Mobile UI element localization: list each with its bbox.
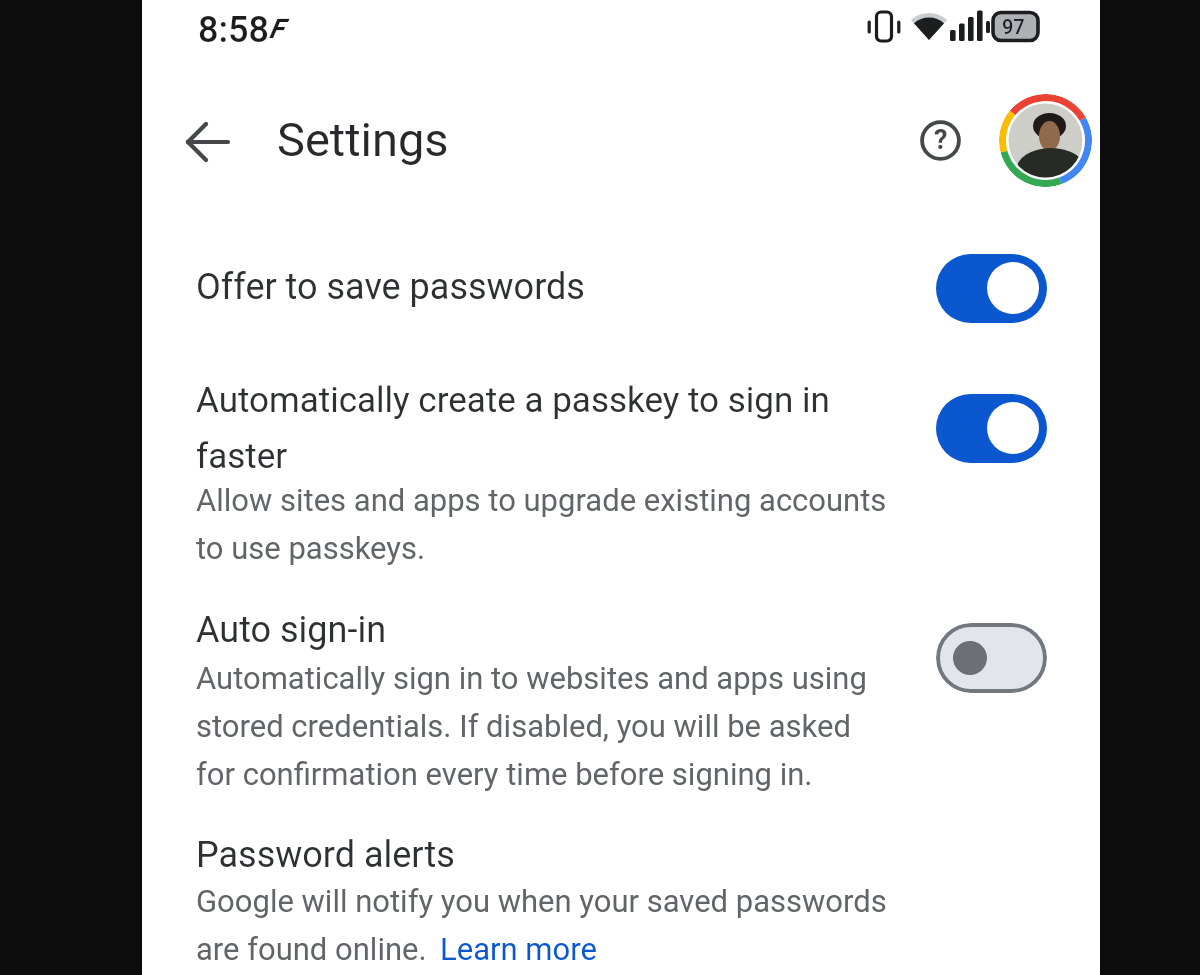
staticText: 97 — [1002, 15, 1025, 38]
staticText: Allow sites and apps to upgrade existing… — [196, 482, 887, 567]
staticText: ? — [934, 124, 948, 156]
button[interactable] — [936, 394, 1047, 463]
staticText: Auto sign-in — [196, 609, 387, 651]
staticText: Settings — [277, 112, 449, 167]
staticText: are found online. — [196, 931, 427, 967]
staticText: Automatically create a passkey to sign i… — [196, 380, 830, 477]
button[interactable] — [142, 240, 1100, 348]
staticText: Password alerts — [196, 834, 455, 876]
button[interactable] — [999, 94, 1092, 187]
button[interactable] — [936, 623, 1047, 693]
staticText: Offer to save passwords — [196, 266, 585, 308]
button[interactable] — [142, 362, 1100, 574]
button[interactable] — [438, 922, 598, 966]
staticText: 8:58 — [198, 9, 269, 51]
button[interactable] — [180, 116, 234, 168]
staticText: Learn more — [440, 931, 597, 967]
staticText: Google will notify you when your saved p… — [196, 883, 887, 919]
button[interactable] — [914, 114, 967, 167]
staticText: Automatically sign in to websites and ap… — [196, 660, 867, 792]
staticText: F — [269, 13, 284, 45]
button[interactable] — [142, 600, 1100, 805]
button[interactable] — [142, 828, 1100, 975]
button[interactable] — [936, 254, 1047, 323]
